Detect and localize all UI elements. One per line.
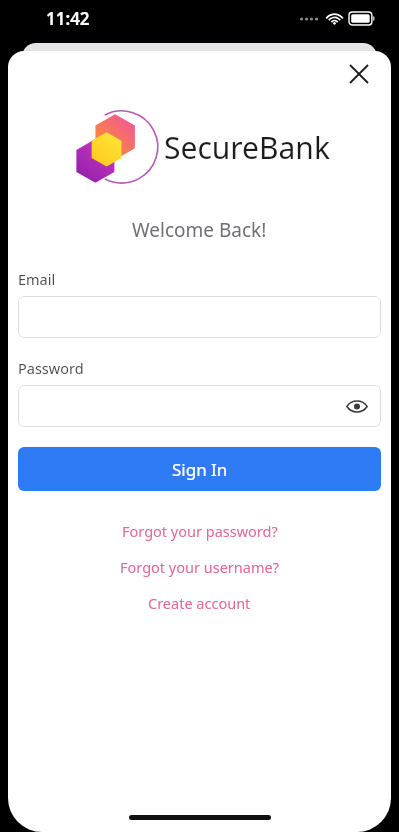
- staticText: SecureBank: [164, 127, 330, 168]
- button[interactable]: Sign In: [18, 447, 381, 491]
- staticText: Password: [18, 358, 84, 378]
- staticText: Forgot your password?: [122, 521, 278, 541]
- button[interactable]: Show password: [18, 385, 381, 427]
- button[interactable]: Create account: [142, 591, 257, 615]
- staticText: 11:42: [46, 7, 90, 30]
- button[interactable]: Forgot your username?: [114, 555, 285, 579]
- staticText: Welcome Back!: [132, 217, 267, 243]
- button[interactable]: Forgot your password?: [116, 519, 284, 543]
- staticText: Forgot your username?: [120, 557, 279, 577]
- button[interactable]: Close: [339, 54, 379, 94]
- button[interactable]: [18, 296, 381, 338]
- staticText: Create account: [148, 593, 251, 613]
- staticText: Email: [18, 269, 56, 289]
- staticText: Sign In: [172, 458, 228, 481]
- button[interactable]: Show password: [341, 390, 373, 422]
